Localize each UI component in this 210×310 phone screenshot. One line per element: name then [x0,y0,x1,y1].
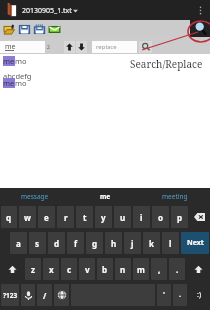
staticText: b [102,264,108,275]
button[interactable]: v [79,258,95,280]
button[interactable]: Search [190,20,210,37]
button[interactable]: Save as [32,21,46,38]
button[interactable]: . [173,284,187,306]
staticText: g [92,238,98,249]
button[interactable]: f [67,232,84,254]
button[interactable]: Replace all [139,41,152,53]
button[interactable]: p [171,206,188,228]
button[interactable]: me [0,41,45,53]
staticText: u [120,212,126,223]
button[interactable]: . [169,258,185,280]
staticText: me [100,192,111,201]
button[interactable]: i [133,206,150,228]
staticText: c [67,264,72,275]
button[interactable]: meeting [140,188,210,204]
staticText: me [3,56,15,66]
staticText: meeting [162,192,188,201]
button[interactable]: Send [47,21,61,38]
button[interactable]: h [105,232,122,254]
staticText: message [21,192,49,201]
button[interactable]: a [10,232,27,254]
staticText: Search/Replace [130,57,203,71]
staticText: r [64,212,68,223]
button[interactable]: Save [17,21,31,38]
staticText: f [74,238,78,249]
button[interactable]: u [114,206,131,228]
button[interactable]: Open file [2,21,16,38]
staticText: abcdefg [3,71,32,81]
button[interactable]: k [143,232,160,254]
button[interactable]: Change language [54,284,69,306]
button[interactable]: s [29,232,46,254]
staticText: n [120,264,126,275]
button[interactable]: message [0,188,70,204]
staticText: m [137,264,145,275]
button[interactable]: Find previous [64,41,75,53]
staticText: ?123 [3,291,18,300]
staticText: ' [163,290,165,300]
staticText: l [169,238,172,249]
button[interactable]: b [97,258,113,280]
staticText: . [179,290,181,300]
button[interactable]: ' [157,284,171,306]
button[interactable]: d [48,232,65,254]
button[interactable]: replace [92,41,137,53]
staticText: j [131,238,134,249]
button[interactable]: Voice input [21,284,35,306]
button[interactable]: c [61,258,77,280]
button[interactable]: ?123 [1,284,19,306]
staticText: v [85,264,90,275]
button[interactable]: Next [181,232,209,254]
button[interactable]: z [25,258,41,280]
button[interactable]: , [151,258,167,280]
button[interactable]: me [70,188,140,204]
staticText: d [54,238,60,249]
staticText: a [16,238,21,249]
staticText: Next [187,238,204,248]
button[interactable]: m [133,258,149,280]
button[interactable]: Backspace [190,206,209,228]
staticText: 20130905_1.txt [22,6,72,16]
button[interactable]: Find next [76,41,87,53]
staticText: x [49,264,54,275]
staticText: replace [96,43,117,51]
button[interactable]: o [152,206,169,228]
button[interactable]: w [19,206,36,228]
button[interactable]: e [38,206,55,228]
button[interactable]: x [43,258,59,280]
staticText: z [31,264,35,275]
button[interactable]: Shift [1,258,23,280]
staticText: :) [197,290,201,300]
button[interactable]: Emoji [189,284,209,306]
button[interactable]: App icon [3,0,19,20]
staticText: . [176,264,179,275]
staticText: mo [15,78,27,88]
staticText: 2 [47,44,50,51]
staticText: me [3,78,15,88]
staticText: w [24,212,31,223]
staticText: / [43,290,47,301]
staticText: mo [15,56,27,66]
button[interactable]: g [86,232,103,254]
button[interactable]: r [57,206,74,228]
button[interactable]: More options [190,0,210,20]
staticText: me [5,42,16,52]
staticText: e [44,212,49,223]
staticText: t [83,212,87,223]
staticText: s [35,238,40,249]
button[interactable]: / [37,284,52,306]
staticText: q [6,212,12,223]
staticText: i [140,212,143,223]
staticText: p [177,212,183,223]
button[interactable]: y [95,206,112,228]
staticText: h [111,238,117,249]
button[interactable]: t [76,206,93,228]
button[interactable]: n [115,258,131,280]
staticText: y [101,212,106,223]
button[interactable]: j [124,232,141,254]
button[interactable]: q [1,206,17,228]
button[interactable]: l [162,232,179,254]
staticText: o [158,212,163,223]
button[interactable]: Shift [187,258,209,280]
